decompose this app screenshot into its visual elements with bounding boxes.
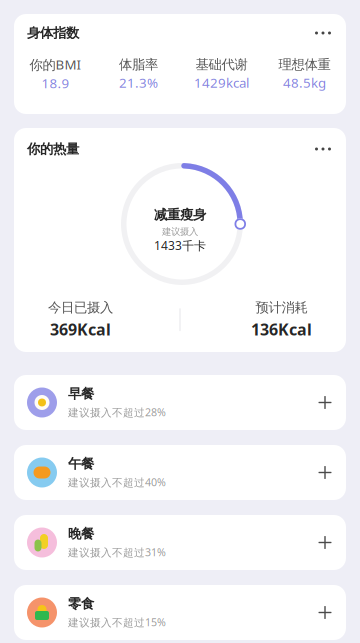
button[interactable]: 早餐: [14, 375, 346, 430]
staticText: 体脂率: [119, 56, 158, 73]
staticText: 建议摄入不超过15%: [68, 615, 166, 629]
staticText: 建议摄入不超过31%: [68, 545, 166, 559]
staticText: 理想体重: [278, 56, 330, 73]
staticText: 18.9: [41, 74, 69, 92]
staticText: 建议摄入不超过40%: [68, 475, 166, 489]
staticText: 你的BMI: [29, 56, 81, 73]
staticText: 48.5kg: [283, 74, 326, 91]
staticText: 身体指数: [27, 25, 79, 41]
staticText: 136Kcal: [251, 319, 312, 340]
staticText: 21.3%: [119, 74, 158, 91]
staticText: 1429kcal: [194, 74, 249, 91]
staticText: 今日已摄入: [48, 299, 113, 316]
staticText: 建议摄入: [162, 226, 198, 237]
button[interactable]: 午餐: [14, 445, 346, 500]
button[interactable]: 晚餐: [14, 515, 346, 570]
staticText: 午餐: [68, 456, 94, 472]
staticText: 预计消耗: [255, 299, 307, 316]
button[interactable]: 零食: [14, 585, 346, 640]
staticText: 你的热量: [27, 141, 79, 157]
button[interactable]: More calorie options: [310, 140, 336, 158]
staticText: 建议摄入不超过28%: [68, 405, 166, 419]
staticText: 晚餐: [68, 526, 94, 542]
staticText: 减重瘦身: [154, 207, 206, 223]
staticText: 早餐: [68, 386, 94, 402]
button[interactable]: More body metrics: [310, 24, 336, 42]
staticText: 零食: [68, 596, 94, 612]
staticText: 基础代谢: [195, 56, 247, 73]
staticText: 1433千卡: [154, 237, 206, 253]
staticText: 369Kcal: [50, 319, 111, 340]
